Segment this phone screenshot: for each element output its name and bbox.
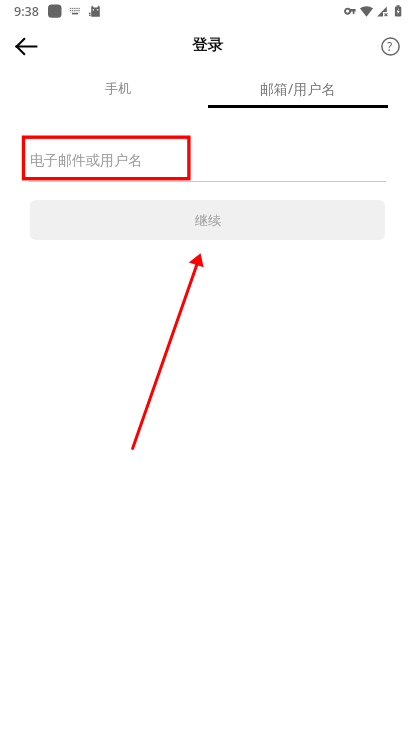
button[interactable]: Back [10,30,42,62]
staticText: 9:38 [14,3,39,20]
button[interactable]: 继续 [30,200,385,240]
staticText: 手机 [105,80,131,96]
button[interactable]: Help [374,30,406,62]
button[interactable]: 手机 [28,69,208,107]
staticText: ? [387,38,393,54]
staticText: 电子邮件或用户名 [30,152,142,170]
staticText: 继续 [195,212,221,228]
staticText: 登录 [192,35,223,55]
button[interactable]: 邮箱/用户名 [208,69,388,107]
button[interactable]: 电子邮件或用户名 [29,139,386,181]
staticText: 邮箱/用户名 [260,79,336,98]
